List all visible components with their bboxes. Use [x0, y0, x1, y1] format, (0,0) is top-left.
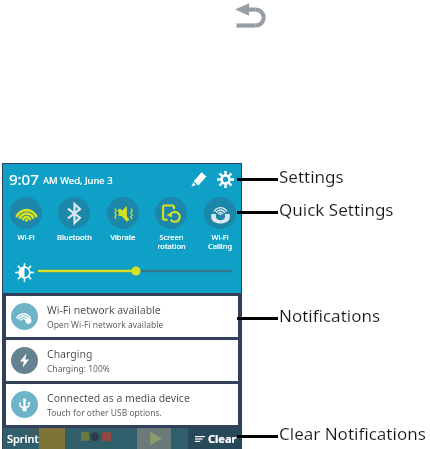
- staticText: Sprint: [7, 431, 39, 446]
- staticText: Connected as a media device: [47, 391, 190, 405]
- button[interactable]: Connected as a media device: [6, 384, 238, 425]
- staticText: 9:07: [9, 169, 39, 189]
- button[interactable]: Charging: [6, 340, 238, 381]
- button[interactable]: Back: [234, 2, 269, 30]
- button[interactable]: Settings: [215, 169, 235, 189]
- staticText: Touch for other USB options.: [47, 407, 162, 419]
- button[interactable]: Edit: [189, 169, 209, 189]
- button[interactable]: Wi-Fi Calling: [196, 197, 244, 252]
- staticText: Vibrate: [110, 232, 136, 242]
- staticText: Charging: [47, 347, 93, 361]
- staticText: Quick Settings: [279, 198, 394, 221]
- button[interactable]: Vibrate: [99, 197, 147, 242]
- staticText: Open Wi-Fi network available: [47, 319, 164, 331]
- button[interactable]: [37, 260, 233, 282]
- staticText: Clear: [208, 431, 237, 446]
- staticText: Wi-Fi: [17, 232, 35, 242]
- button[interactable]: Screen rotation: [147, 197, 195, 252]
- button[interactable]: Clear: [194, 431, 237, 446]
- staticText: Screen rotation: [157, 232, 186, 252]
- staticText: Wi-Fi Calling: [208, 232, 232, 252]
- staticText: Bluetooth: [57, 232, 92, 242]
- staticText: Notifications: [279, 304, 381, 327]
- button[interactable]: Wi-Fi: [2, 197, 50, 242]
- button[interactable]: Bluetooth: [50, 197, 98, 242]
- staticText: Clear Notifications: [279, 422, 426, 445]
- staticText: Settings: [279, 165, 344, 188]
- staticText: Charging: 100%: [47, 363, 110, 375]
- staticText: Wi-Fi network available: [47, 303, 161, 317]
- staticText: AM Wed, June 3: [43, 174, 113, 187]
- button[interactable]: Wi-Fi network available: [6, 296, 238, 337]
